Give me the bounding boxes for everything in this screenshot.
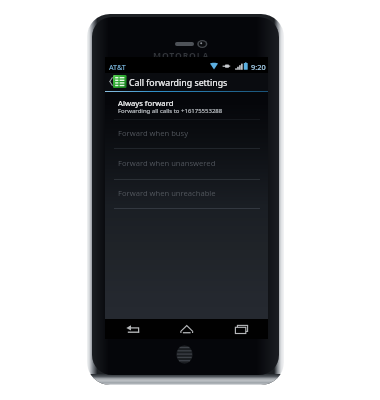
button[interactable]: Always forward bbox=[105, 92, 268, 119]
staticText: AT&T bbox=[109, 62, 126, 72]
staticText: Always forward bbox=[118, 98, 174, 108]
staticText: Forward when unreachable bbox=[118, 188, 216, 198]
button[interactable]: Forward when unanswered bbox=[105, 149, 268, 179]
staticText: Forwarding all calls to +16175553288 bbox=[118, 107, 223, 115]
button[interactable]: Recent apps bbox=[214, 319, 268, 339]
staticText: Forward when unanswered bbox=[118, 158, 216, 168]
button[interactable]: Home bbox=[160, 319, 214, 339]
other: Navigate up bbox=[109, 77, 113, 86]
button[interactable]: Back bbox=[105, 319, 160, 339]
button[interactable]: Navigate up bbox=[105, 73, 268, 91]
button[interactable]: Forward when busy bbox=[105, 120, 268, 148]
staticText: Call forwarding settings bbox=[129, 77, 228, 89]
staticText: 9:20 bbox=[251, 62, 266, 72]
staticText: MOTOROLA bbox=[153, 50, 210, 62]
button[interactable]: Forward when unreachable bbox=[105, 180, 268, 208]
staticText: Forward when busy bbox=[118, 128, 189, 138]
